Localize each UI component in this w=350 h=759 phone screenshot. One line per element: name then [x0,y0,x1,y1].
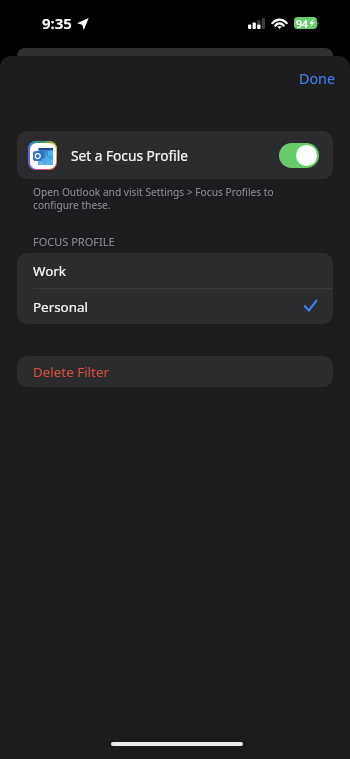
staticText: Delete Filter [33,363,109,381]
button[interactable]: Done [283,61,350,96]
button[interactable]: Personal [17,289,333,324]
staticText: Open Outlook and visit Settings > Focus … [33,185,300,212]
button[interactable]: Set a Focus Profile [17,131,333,179]
staticText: 9:35 [42,13,72,33]
staticText: Set a Focus Profile [71,146,188,165]
staticText: Done [299,69,335,88]
staticText: 94 [296,17,309,29]
staticText: Work [33,262,66,280]
button[interactable]: Set a Focus Profile toggle [279,143,319,168]
staticText: Personal [33,298,88,316]
button[interactable]: Delete Filter [17,356,333,387]
staticText: FOCUS PROFILE [33,234,115,249]
button[interactable]: Work [17,253,333,288]
